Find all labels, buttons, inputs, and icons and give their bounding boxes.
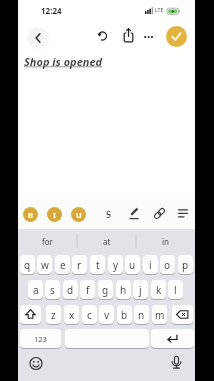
staticText: l bbox=[174, 283, 177, 297]
staticText: 12:24 bbox=[41, 5, 62, 16]
button[interactable]: at bbox=[77, 231, 136, 251]
button[interactable] bbox=[27, 27, 49, 49]
staticText: at bbox=[103, 236, 111, 247]
button[interactable]: m bbox=[152, 305, 167, 324]
button[interactable] bbox=[151, 329, 194, 348]
button[interactable]: j bbox=[133, 280, 148, 299]
button[interactable]: b bbox=[117, 305, 132, 324]
button[interactable]: for bbox=[18, 231, 77, 251]
button[interactable]: in bbox=[136, 231, 195, 251]
button[interactable]: S bbox=[102, 206, 114, 222]
staticText: o bbox=[164, 258, 171, 272]
staticText: i bbox=[149, 258, 152, 272]
staticText: U bbox=[76, 210, 82, 220]
button[interactable] bbox=[177, 206, 189, 221]
staticText: t bbox=[96, 258, 100, 272]
button[interactable]: z bbox=[46, 305, 61, 324]
staticText: S bbox=[106, 208, 111, 220]
staticText: g bbox=[102, 283, 109, 297]
staticText: e bbox=[60, 258, 66, 272]
staticText: for bbox=[42, 236, 53, 247]
button[interactable] bbox=[172, 305, 193, 324]
staticText: r bbox=[77, 258, 82, 272]
button[interactable]: B bbox=[23, 207, 38, 222]
button[interactable]: g bbox=[98, 280, 113, 299]
button[interactable]: u bbox=[125, 255, 140, 274]
button[interactable] bbox=[65, 329, 149, 348]
button[interactable]: s bbox=[45, 280, 60, 299]
button[interactable]: q bbox=[20, 255, 35, 274]
button[interactable] bbox=[169, 355, 184, 371]
staticText: q bbox=[24, 258, 31, 272]
button[interactable]: p bbox=[178, 255, 193, 274]
button[interactable] bbox=[96, 29, 109, 43]
staticText: 123 bbox=[34, 334, 47, 344]
staticText: z bbox=[51, 308, 56, 322]
staticText: n bbox=[138, 308, 145, 322]
button[interactable]: f bbox=[80, 280, 95, 299]
staticText: Shop is opened bbox=[24, 54, 103, 69]
staticText: b bbox=[121, 308, 128, 322]
button[interactable] bbox=[166, 26, 187, 47]
button[interactable] bbox=[20, 305, 41, 324]
staticText: I bbox=[53, 210, 56, 220]
staticText: d bbox=[67, 283, 74, 297]
button[interactable]: k bbox=[151, 280, 166, 299]
staticText: c bbox=[87, 308, 92, 322]
button[interactable] bbox=[29, 356, 43, 371]
button[interactable]: I bbox=[47, 207, 62, 222]
button[interactable]: l bbox=[168, 280, 183, 299]
staticText: LTE bbox=[155, 7, 164, 14]
staticText: v bbox=[104, 308, 110, 322]
button[interactable]: t bbox=[90, 255, 105, 274]
button[interactable]: x bbox=[64, 305, 79, 324]
staticText: B bbox=[28, 210, 33, 220]
button[interactable]: d bbox=[63, 280, 78, 299]
staticText: y bbox=[113, 258, 119, 272]
button[interactable]: v bbox=[99, 305, 114, 324]
button[interactable] bbox=[127, 206, 141, 221]
staticText: h bbox=[120, 283, 127, 297]
staticText: k bbox=[156, 283, 162, 297]
staticText: j bbox=[139, 283, 142, 297]
button[interactable]: a bbox=[28, 280, 43, 299]
staticText: f bbox=[86, 283, 90, 297]
staticText: u bbox=[129, 258, 136, 272]
staticText: x bbox=[69, 308, 75, 322]
staticText: m bbox=[155, 308, 165, 322]
staticText: p bbox=[182, 258, 189, 272]
button[interactable]: 123 bbox=[20, 329, 61, 348]
button[interactable]: o bbox=[160, 255, 175, 274]
staticText: a bbox=[33, 283, 39, 297]
button[interactable]: U bbox=[71, 207, 86, 222]
button[interactable]: y bbox=[108, 255, 123, 274]
button[interactable]: r bbox=[72, 255, 87, 274]
button[interactable] bbox=[152, 206, 167, 221]
button[interactable]: c bbox=[82, 305, 97, 324]
button[interactable] bbox=[122, 27, 135, 44]
button[interactable]: h bbox=[116, 280, 131, 299]
button[interactable]: i bbox=[143, 255, 158, 274]
button[interactable]: n bbox=[134, 305, 149, 324]
staticText: s bbox=[50, 283, 55, 297]
button[interactable]: w bbox=[37, 255, 52, 274]
button[interactable]: e bbox=[55, 255, 70, 274]
button[interactable] bbox=[143, 33, 155, 41]
staticText: w bbox=[41, 258, 49, 272]
staticText: in bbox=[162, 236, 170, 247]
